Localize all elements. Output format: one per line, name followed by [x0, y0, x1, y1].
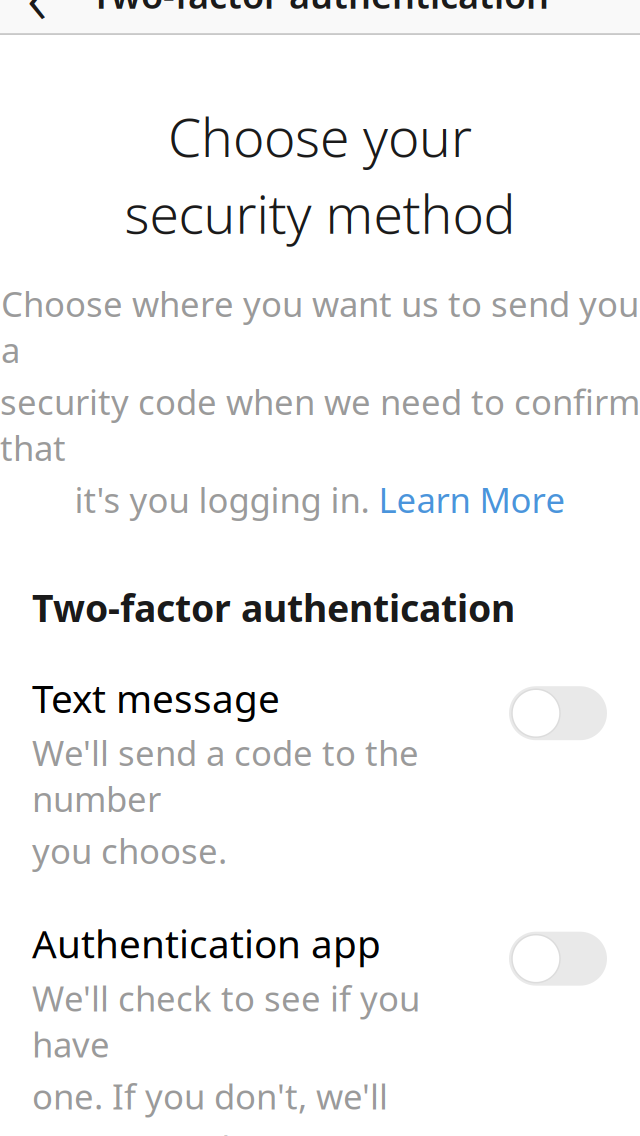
staticText: We'll send a code to the number: [32, 730, 419, 822]
staticText: Text message: [32, 672, 280, 723]
staticText: security code when we need to confirm th…: [0, 378, 640, 471]
staticText: Two-factor authentication: [32, 583, 515, 632]
staticText: ‹: [27, 0, 47, 46]
staticText: security method: [124, 178, 515, 248]
staticText: it's you logging in.: [74, 477, 378, 523]
staticText: We'll check to see if you have: [32, 975, 420, 1067]
staticText: Learn More: [378, 477, 565, 523]
staticText: Authentication app: [32, 918, 381, 969]
button[interactable]: Learn More: [378, 477, 565, 523]
button[interactable]: Back: [0, 0, 74, 35]
staticText: Choose where you want us to send you a: [1, 280, 639, 373]
button[interactable]: Text message: [0, 632, 640, 874]
button[interactable]: Authentication app: [0, 874, 640, 1136]
staticText: one. If you don't, we'll: [32, 1073, 388, 1119]
staticText: Choose your: [168, 101, 472, 172]
staticText: you choose.: [32, 828, 227, 874]
staticText: Two-factor authentication: [91, 0, 549, 19]
